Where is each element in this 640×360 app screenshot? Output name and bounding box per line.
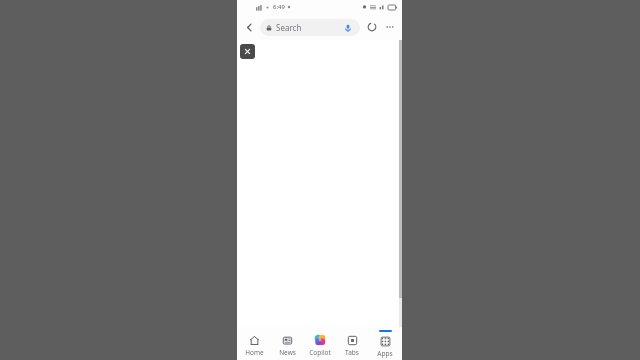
staticText: Home [245,348,264,357]
staticText: Apps [377,349,393,358]
button[interactable]: News [271,327,303,360]
staticText: Search [276,22,342,33]
button[interactable]: Home [238,327,270,360]
staticText: Copilot [309,348,331,357]
button[interactable]: Copilot [304,327,336,360]
button[interactable]: Refresh [363,18,381,36]
button[interactable]: Back [240,18,258,36]
staticText: Tabs [345,348,359,357]
button[interactable]: Tabs [336,327,368,360]
button[interactable]: Voice search [342,22,354,34]
staticText: 6:49 [273,3,285,11]
button[interactable]: More options [381,18,399,36]
staticText: News [279,348,296,357]
button[interactable]: Search [260,19,360,36]
button[interactable]: Close [240,44,255,59]
button[interactable]: Apps [369,327,401,360]
